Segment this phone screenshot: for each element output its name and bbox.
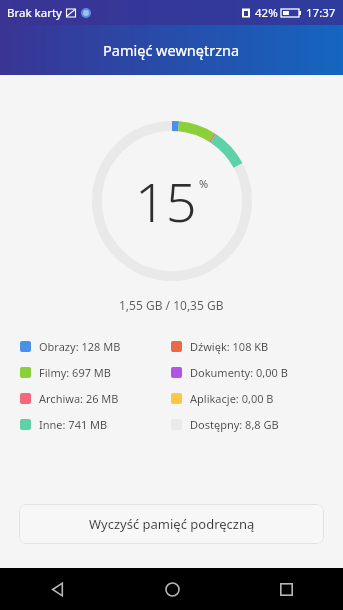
staticText: Archiwa: 26 MB (39, 391, 119, 406)
button[interactable]: Inne: 741 MB (20, 417, 108, 432)
button[interactable]: Dźwięk: 108 KB (171, 339, 269, 354)
staticText: Wyczyść pamięć podręczną (89, 515, 255, 533)
staticText: 15 (135, 164, 197, 238)
staticText: Inne: 741 MB (39, 417, 108, 432)
button[interactable]: Aplikacje: 0,00 B (171, 391, 274, 406)
button[interactable]: Dostępny: 8,8 GB (171, 417, 279, 432)
staticText: Dźwięk: 108 KB (190, 339, 269, 354)
staticText: % (199, 176, 209, 191)
staticText: 1,55 GB / 10,35 GB (119, 297, 224, 313)
button[interactable]: Home (115, 568, 229, 610)
staticText: Obrazy: 128 MB (39, 339, 121, 354)
staticText: Pamięć wewnętrzna (103, 40, 240, 60)
button[interactable]: Back (0, 568, 115, 610)
button[interactable]: Archiwa: 26 MB (20, 391, 119, 406)
staticText: 42% (255, 5, 278, 21)
staticText: Dostępny: 8,8 GB (190, 417, 279, 432)
staticText: Brak karty (7, 5, 62, 21)
staticText: Aplikacje: 0,00 B (190, 391, 274, 406)
staticText: Filmy: 697 MB (39, 365, 111, 380)
button[interactable]: Wyczyść pamięć podręczną (19, 504, 324, 544)
button[interactable]: Filmy: 697 MB (20, 365, 111, 380)
staticText: 17:37 (306, 5, 336, 21)
button[interactable]: Recent apps (229, 568, 343, 610)
button[interactable]: Obrazy: 128 MB (20, 339, 121, 354)
button[interactable]: Dokumenty: 0,00 B (171, 365, 288, 380)
staticText: Dokumenty: 0,00 B (190, 365, 288, 380)
